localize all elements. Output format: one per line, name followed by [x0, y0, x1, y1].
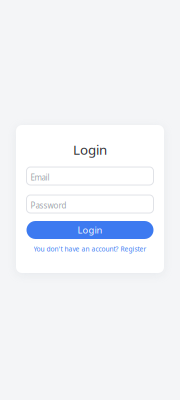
staticText: Password	[30, 200, 66, 211]
button[interactable]: Password	[26, 195, 153, 213]
staticText: Login	[73, 141, 107, 158]
button[interactable]: Email	[26, 167, 153, 185]
staticText: Email	[30, 172, 49, 183]
staticText: You don't have an account? Register	[33, 245, 146, 253]
staticText: Login	[77, 224, 102, 236]
button[interactable]: Login	[26, 221, 153, 239]
button[interactable]: You don't have an account? Register	[16, 244, 164, 254]
